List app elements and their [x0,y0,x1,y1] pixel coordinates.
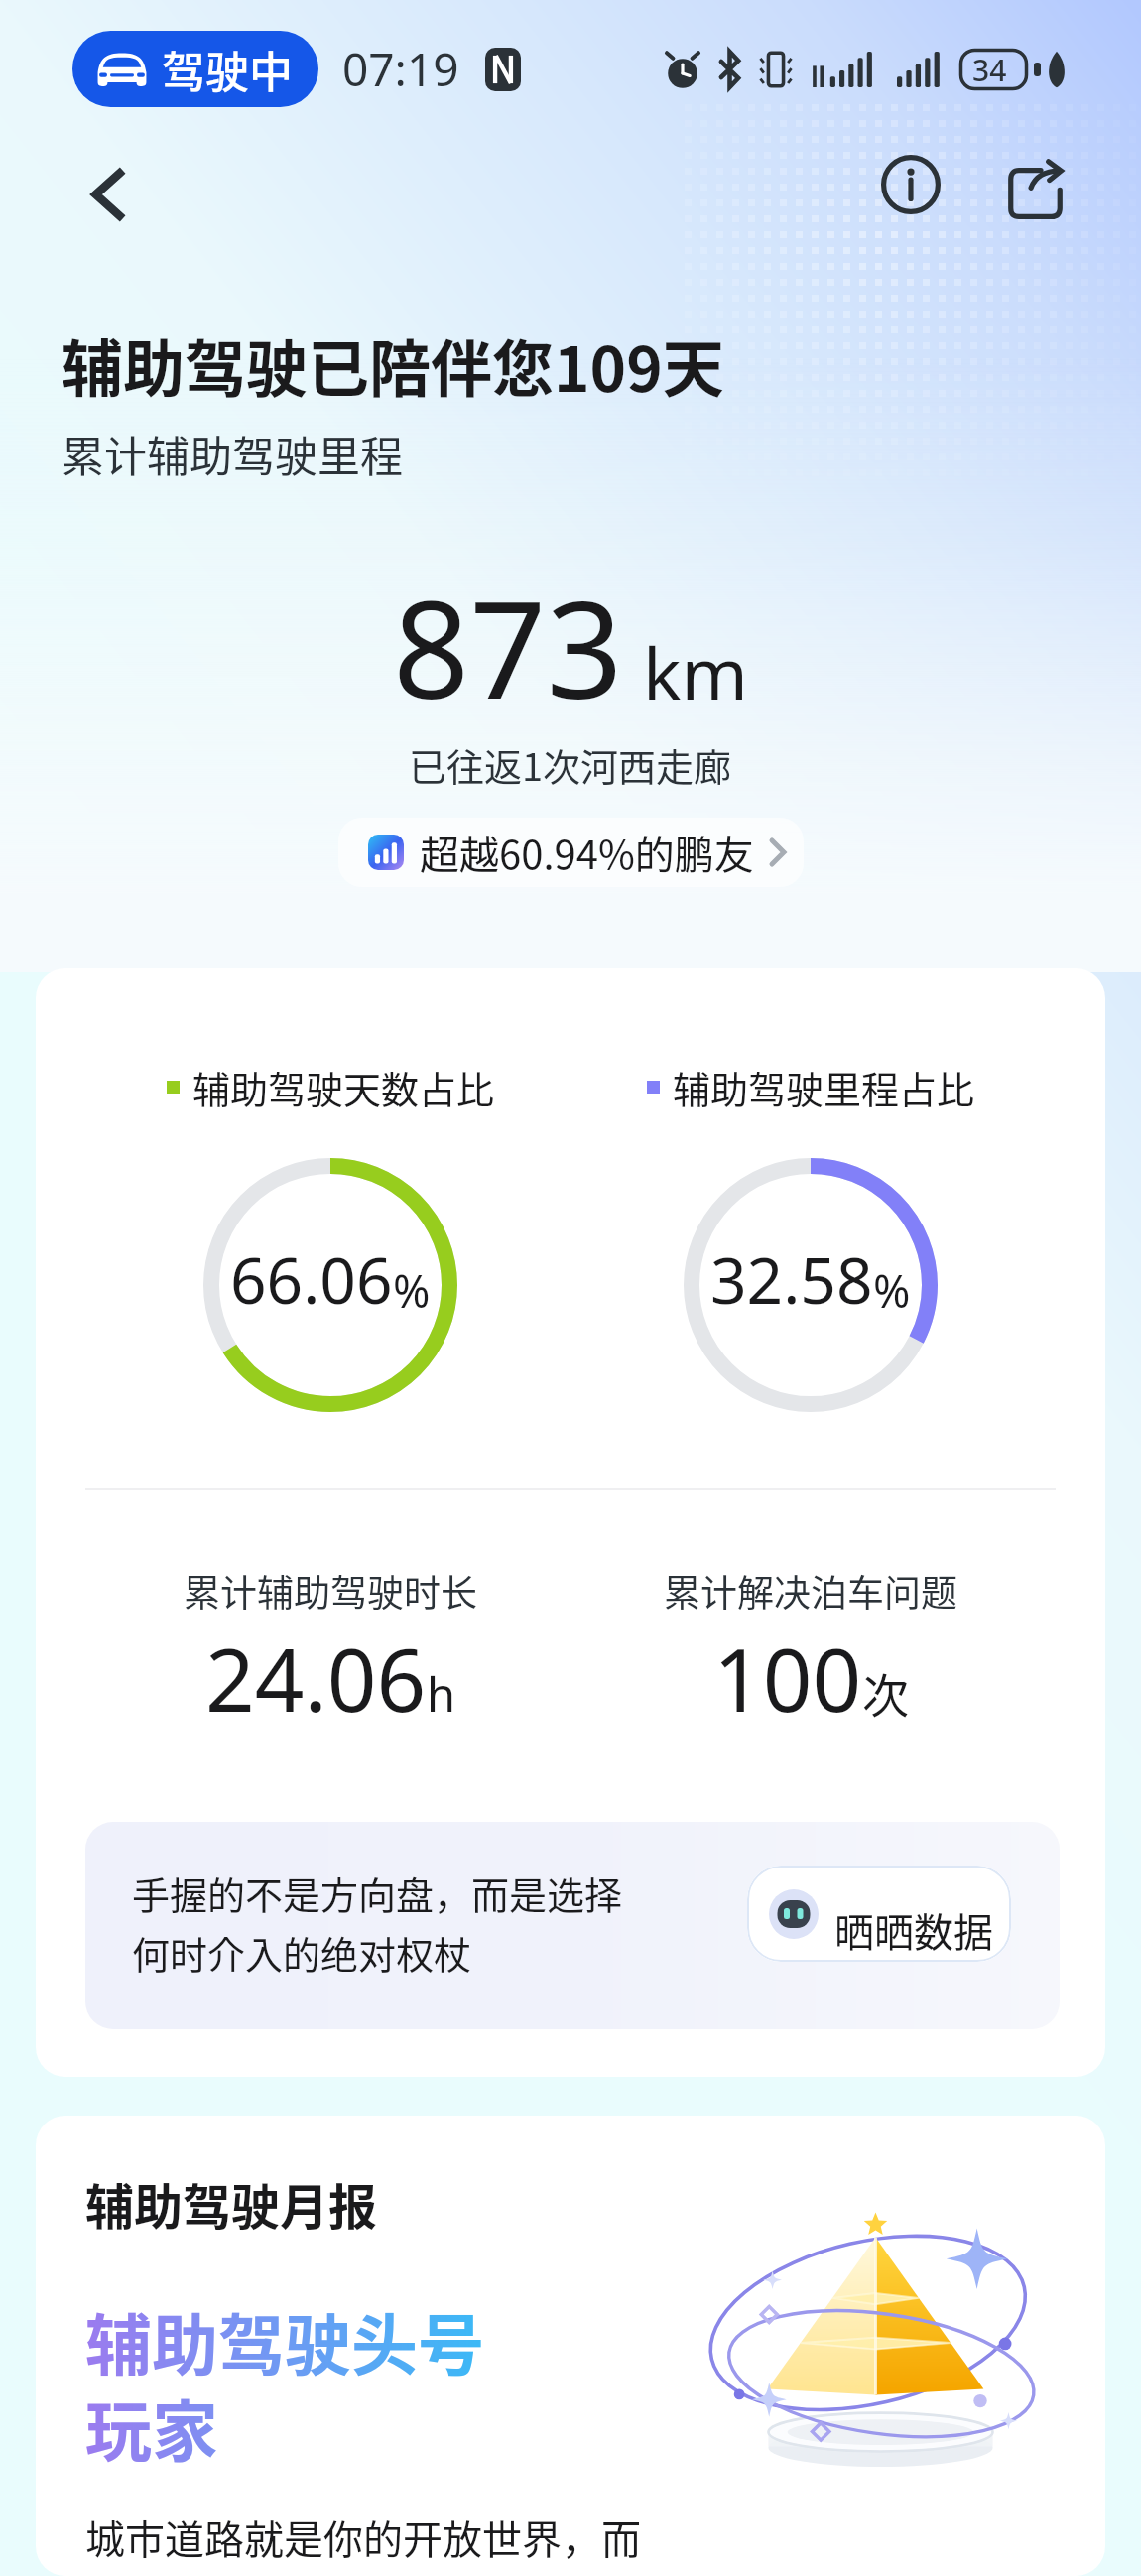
staticText: 873 [393,556,623,738]
staticText: % [393,1260,431,1321]
button[interactable]: Share [990,146,1079,235]
staticText: 驾驶中 [162,38,293,101]
staticText: 已往返1次河西走廊 [409,737,732,792]
staticText: 累计解决泊车问题 [664,1564,957,1617]
button[interactable]: 超越60.94%的鹏友 [338,818,804,887]
staticText: km [643,623,748,720]
staticText: 辅助驾驶月报 [85,2168,378,2239]
staticText: 辅助驾驶已陪伴您109天 [62,321,724,410]
button[interactable]: 驾驶中 [72,31,318,107]
staticText: 34 [972,50,1007,90]
staticText: 32.58 [710,1236,873,1323]
staticText: 辅助驾驶头号 玩家 [85,2292,484,2475]
staticText: 66.06 [230,1236,393,1323]
button[interactable]: Back [63,150,152,239]
staticText: 晒晒数据 [834,1901,993,1959]
staticText: 辅助驾驶里程占比 [673,1060,975,1114]
button[interactable]: Info [866,140,955,229]
staticText: % [873,1260,911,1321]
staticText: h [427,1662,456,1726]
staticText: 24.06 [205,1619,427,1737]
staticText: 累计辅助驾驶里程 [62,423,403,484]
staticText: 辅助驾驶天数占比 [192,1060,495,1114]
staticText: 超越60.94%的鹏友 [420,824,754,881]
button[interactable]: 辅助驾驶月报 [36,2116,1105,2576]
staticText: 100 [713,1619,862,1737]
staticText: 手握的不是方向盘，而是选择 何时介入的绝对权杖 [132,1866,623,1980]
staticText: 累计辅助驾驶时长 [184,1564,477,1617]
staticText: 次 [862,1658,909,1726]
button[interactable]: 晒晒数据 [747,1866,1011,1962]
staticText: 城市道路就是你的开放世界，而 [85,2509,641,2566]
staticText: 07:19 [342,38,459,100]
